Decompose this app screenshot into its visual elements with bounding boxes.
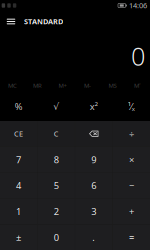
button[interactable]: C xyxy=(38,121,75,146)
button[interactable]: Backspace xyxy=(75,121,112,146)
staticText: MS xyxy=(108,81,116,90)
staticText: 1 xyxy=(16,205,21,218)
button[interactable]: 6 xyxy=(75,173,112,198)
staticText: M˅ xyxy=(134,81,141,90)
staticText: % xyxy=(15,100,23,113)
staticText: 2 xyxy=(54,205,59,218)
button[interactable]: 3 xyxy=(75,199,112,224)
button[interactable]: M- xyxy=(75,79,100,92)
staticText: 3 xyxy=(91,205,96,218)
button[interactable]: MC xyxy=(0,79,25,92)
staticText: 7 xyxy=(16,153,21,166)
button[interactable]: % xyxy=(0,92,37,121)
staticText: M+ xyxy=(58,81,66,90)
button[interactable]: MS xyxy=(100,79,125,92)
button[interactable]: Menu xyxy=(1,11,21,32)
staticText: 0 xyxy=(131,39,145,73)
staticText: 6 xyxy=(91,179,96,192)
button[interactable]: 4 xyxy=(0,173,37,198)
staticText: MC xyxy=(8,81,17,90)
button[interactable]: M˅ xyxy=(125,79,150,92)
staticText: × xyxy=(129,153,134,166)
staticText: − xyxy=(129,179,134,192)
button[interactable]: 5 xyxy=(38,173,75,198)
staticText: 4 xyxy=(16,179,21,192)
staticText: ÷ xyxy=(129,127,134,140)
staticText: MR xyxy=(33,81,42,90)
staticText: 8 xyxy=(54,153,59,166)
staticText: 14:06 xyxy=(129,0,147,10)
staticText: C xyxy=(54,129,59,139)
button[interactable]: ± xyxy=(0,224,37,250)
button[interactable]: x² xyxy=(75,92,112,121)
staticText: = xyxy=(129,231,134,244)
button[interactable]: = xyxy=(113,224,150,250)
button[interactable]: M+ xyxy=(50,79,75,92)
staticText: √ xyxy=(53,101,59,112)
staticText: STANDARD xyxy=(24,16,63,26)
button[interactable]: ÷ xyxy=(113,121,150,146)
button[interactable]: 1 xyxy=(0,199,37,224)
button[interactable]: 2 xyxy=(38,199,75,224)
button[interactable]: 0 xyxy=(38,224,75,250)
staticText: 9 xyxy=(91,153,96,166)
button[interactable]: 9 xyxy=(75,147,112,172)
button[interactable]: . xyxy=(75,224,112,250)
button[interactable]: ¹⁄ₓ xyxy=(112,92,150,121)
button[interactable]: + xyxy=(113,199,150,224)
staticText: x² xyxy=(90,100,98,113)
staticText: + xyxy=(129,205,134,218)
staticText: . xyxy=(92,231,95,244)
button[interactable]: 8 xyxy=(38,147,75,172)
staticText: CE xyxy=(14,129,23,139)
button[interactable]: − xyxy=(113,173,150,198)
button[interactable]: 7 xyxy=(0,147,37,172)
staticText: 5 xyxy=(54,179,59,192)
staticText: ¹⁄ₓ xyxy=(128,100,135,113)
button[interactable]: CE xyxy=(0,121,37,146)
button[interactable]: × xyxy=(113,147,150,172)
button[interactable]: √ xyxy=(37,92,75,121)
staticText: 0 xyxy=(54,231,59,244)
button[interactable]: MR xyxy=(25,79,50,92)
staticText: ± xyxy=(16,231,21,244)
staticText: M- xyxy=(84,81,91,90)
